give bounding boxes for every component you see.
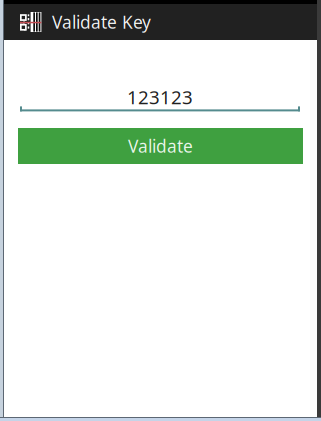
staticText: Validate	[128, 134, 193, 157]
staticText: Validate Key	[52, 10, 151, 33]
staticText: 123123	[127, 85, 193, 109]
button[interactable]: Validate	[18, 128, 303, 164]
button[interactable]: Scan key	[0, 4, 52, 40]
